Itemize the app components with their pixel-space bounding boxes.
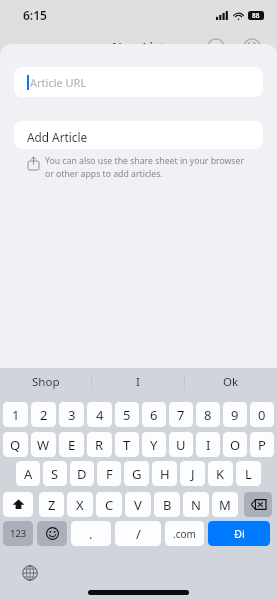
staticText: Add Article bbox=[27, 129, 88, 145]
staticText: F bbox=[106, 465, 113, 483]
button[interactable]: Ok bbox=[185, 368, 277, 395]
staticText: 123 bbox=[10, 527, 27, 540]
button[interactable]: K bbox=[208, 461, 233, 486]
button[interactable]: 5 bbox=[115, 402, 139, 427]
staticText: N bbox=[191, 496, 201, 514]
button[interactable]: B bbox=[154, 492, 180, 517]
button[interactable]: Article URL bbox=[14, 67, 263, 97]
staticText: 8 bbox=[204, 406, 212, 424]
staticText: 4 bbox=[96, 406, 104, 424]
button[interactable]: Đi bbox=[208, 521, 270, 546]
staticText: . bbox=[89, 525, 93, 543]
button[interactable]: I bbox=[92, 368, 184, 395]
staticText: Z bbox=[48, 496, 56, 514]
button[interactable]: C bbox=[96, 492, 122, 517]
staticText: 6 bbox=[150, 406, 158, 424]
staticText: Article URL bbox=[30, 75, 87, 90]
staticText: D bbox=[77, 465, 87, 483]
staticText: O bbox=[230, 436, 241, 454]
button[interactable]: 9 bbox=[223, 402, 247, 427]
button[interactable]: E bbox=[59, 432, 84, 457]
staticText: 3 bbox=[68, 406, 76, 424]
button[interactable]: Backspace bbox=[244, 492, 272, 517]
staticText: Đi bbox=[234, 526, 245, 541]
staticText: G bbox=[132, 465, 142, 483]
staticText: 5 bbox=[123, 406, 131, 424]
button[interactable]: X bbox=[67, 492, 93, 517]
button[interactable]: 7 bbox=[169, 402, 193, 427]
button[interactable]: A bbox=[16, 461, 40, 486]
button[interactable]: Emoji bbox=[37, 521, 67, 546]
button[interactable]: . bbox=[71, 521, 111, 546]
button[interactable]: Shop bbox=[0, 368, 91, 395]
button[interactable]: Switch keyboard bbox=[20, 563, 40, 583]
button[interactable]: 123 bbox=[3, 521, 33, 546]
button[interactable]: N bbox=[183, 492, 209, 517]
staticText: Y bbox=[150, 436, 158, 454]
button[interactable]: H bbox=[152, 461, 177, 486]
button[interactable]: D bbox=[70, 461, 94, 486]
staticText: 6:15 bbox=[23, 7, 47, 23]
staticText: M bbox=[219, 496, 231, 514]
button[interactable]: U bbox=[169, 432, 193, 457]
staticText: B bbox=[163, 496, 172, 514]
staticText: .com bbox=[173, 527, 196, 541]
button[interactable]: V bbox=[125, 492, 151, 517]
staticText: P bbox=[258, 436, 266, 454]
button[interactable]: T bbox=[115, 432, 139, 457]
button[interactable]: O bbox=[223, 432, 247, 457]
staticText: 1 bbox=[12, 406, 20, 424]
staticText: T bbox=[123, 436, 131, 454]
staticText: I bbox=[136, 374, 140, 390]
button[interactable]: J bbox=[180, 461, 205, 486]
button[interactable]: 0 bbox=[250, 402, 274, 427]
staticText: 9 bbox=[231, 406, 239, 424]
button[interactable]: 3 bbox=[59, 402, 84, 427]
staticText: U bbox=[176, 436, 186, 454]
button[interactable]: Shift bbox=[3, 492, 33, 517]
button[interactable]: S bbox=[43, 461, 67, 486]
button[interactable]: G bbox=[124, 461, 149, 486]
staticText: K bbox=[216, 465, 225, 483]
button[interactable]: 2 bbox=[31, 402, 56, 427]
button[interactable]: .com bbox=[165, 521, 204, 546]
button[interactable]: 4 bbox=[87, 402, 112, 427]
staticText: S bbox=[51, 465, 59, 483]
staticText: J bbox=[191, 465, 195, 483]
button[interactable]: M bbox=[212, 492, 238, 517]
button[interactable]: Y bbox=[142, 432, 166, 457]
button[interactable]: F bbox=[97, 461, 121, 486]
button[interactable]: Q bbox=[3, 432, 28, 457]
staticText: A bbox=[24, 465, 33, 483]
staticText: E bbox=[68, 436, 76, 454]
button[interactable]: L bbox=[236, 461, 261, 486]
staticText: New List bbox=[112, 39, 165, 53]
button[interactable]: 8 bbox=[196, 402, 220, 427]
staticText: Shop bbox=[32, 374, 60, 390]
staticText: V bbox=[134, 496, 142, 514]
button[interactable]: P bbox=[250, 432, 274, 457]
button[interactable]: R bbox=[87, 432, 112, 457]
staticText: 0 bbox=[258, 406, 266, 424]
staticText: H bbox=[160, 465, 170, 483]
button[interactable]: W bbox=[31, 432, 56, 457]
staticText: Q bbox=[10, 436, 21, 454]
staticText: L bbox=[245, 465, 252, 483]
staticText: You can also use the share sheet in your… bbox=[45, 155, 244, 179]
staticText: R bbox=[95, 436, 104, 454]
staticText: X bbox=[76, 496, 84, 514]
button[interactable]: 1 bbox=[3, 402, 28, 427]
button[interactable]: Z bbox=[39, 492, 64, 517]
button[interactable]: I bbox=[196, 432, 220, 457]
staticText: Ok bbox=[223, 374, 239, 390]
staticText: C bbox=[105, 496, 114, 514]
staticText: 88 bbox=[252, 11, 260, 20]
button[interactable]: Add Article bbox=[14, 121, 263, 149]
staticText: W bbox=[37, 436, 50, 454]
staticText: / bbox=[136, 525, 141, 543]
button[interactable]: / bbox=[115, 521, 161, 546]
staticText: 7 bbox=[177, 406, 185, 424]
staticText: I bbox=[206, 436, 211, 454]
button[interactable]: 6 bbox=[142, 402, 166, 427]
staticText: 2 bbox=[40, 406, 48, 424]
